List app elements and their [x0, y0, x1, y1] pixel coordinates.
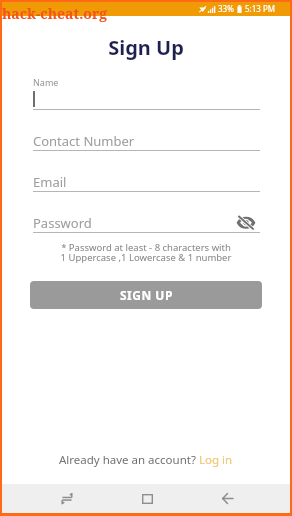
staticText: Password: [33, 214, 92, 232]
button[interactable]: Log in: [199, 452, 233, 468]
button[interactable]: SIGN UP: [30, 281, 262, 309]
staticText: SIGN UP: [120, 287, 173, 303]
button[interactable]: Contact Number: [31, 130, 262, 152]
button[interactable]: Home: [135, 484, 159, 513]
button[interactable]: Show password: [237, 215, 254, 229]
staticText: * Password at least - 8 characters with …: [0, 241, 292, 263]
button[interactable]: Password: [31, 212, 262, 234]
button[interactable]: Recent apps: [55, 484, 79, 513]
staticText: Name: [33, 76, 59, 88]
staticText: Sign Up: [0, 34, 292, 61]
staticText: Contact Number: [33, 132, 135, 150]
staticText: 33%: [218, 3, 234, 14]
staticText: Email: [33, 173, 67, 191]
staticText: hack-cheat.org: [2, 4, 108, 23]
button[interactable]: Email: [31, 171, 262, 193]
staticText: Already have an account?: [59, 452, 199, 468]
staticText: 5:13 PM: [245, 3, 276, 14]
button[interactable]: Back: [215, 484, 239, 513]
staticText: Log in: [199, 452, 233, 468]
